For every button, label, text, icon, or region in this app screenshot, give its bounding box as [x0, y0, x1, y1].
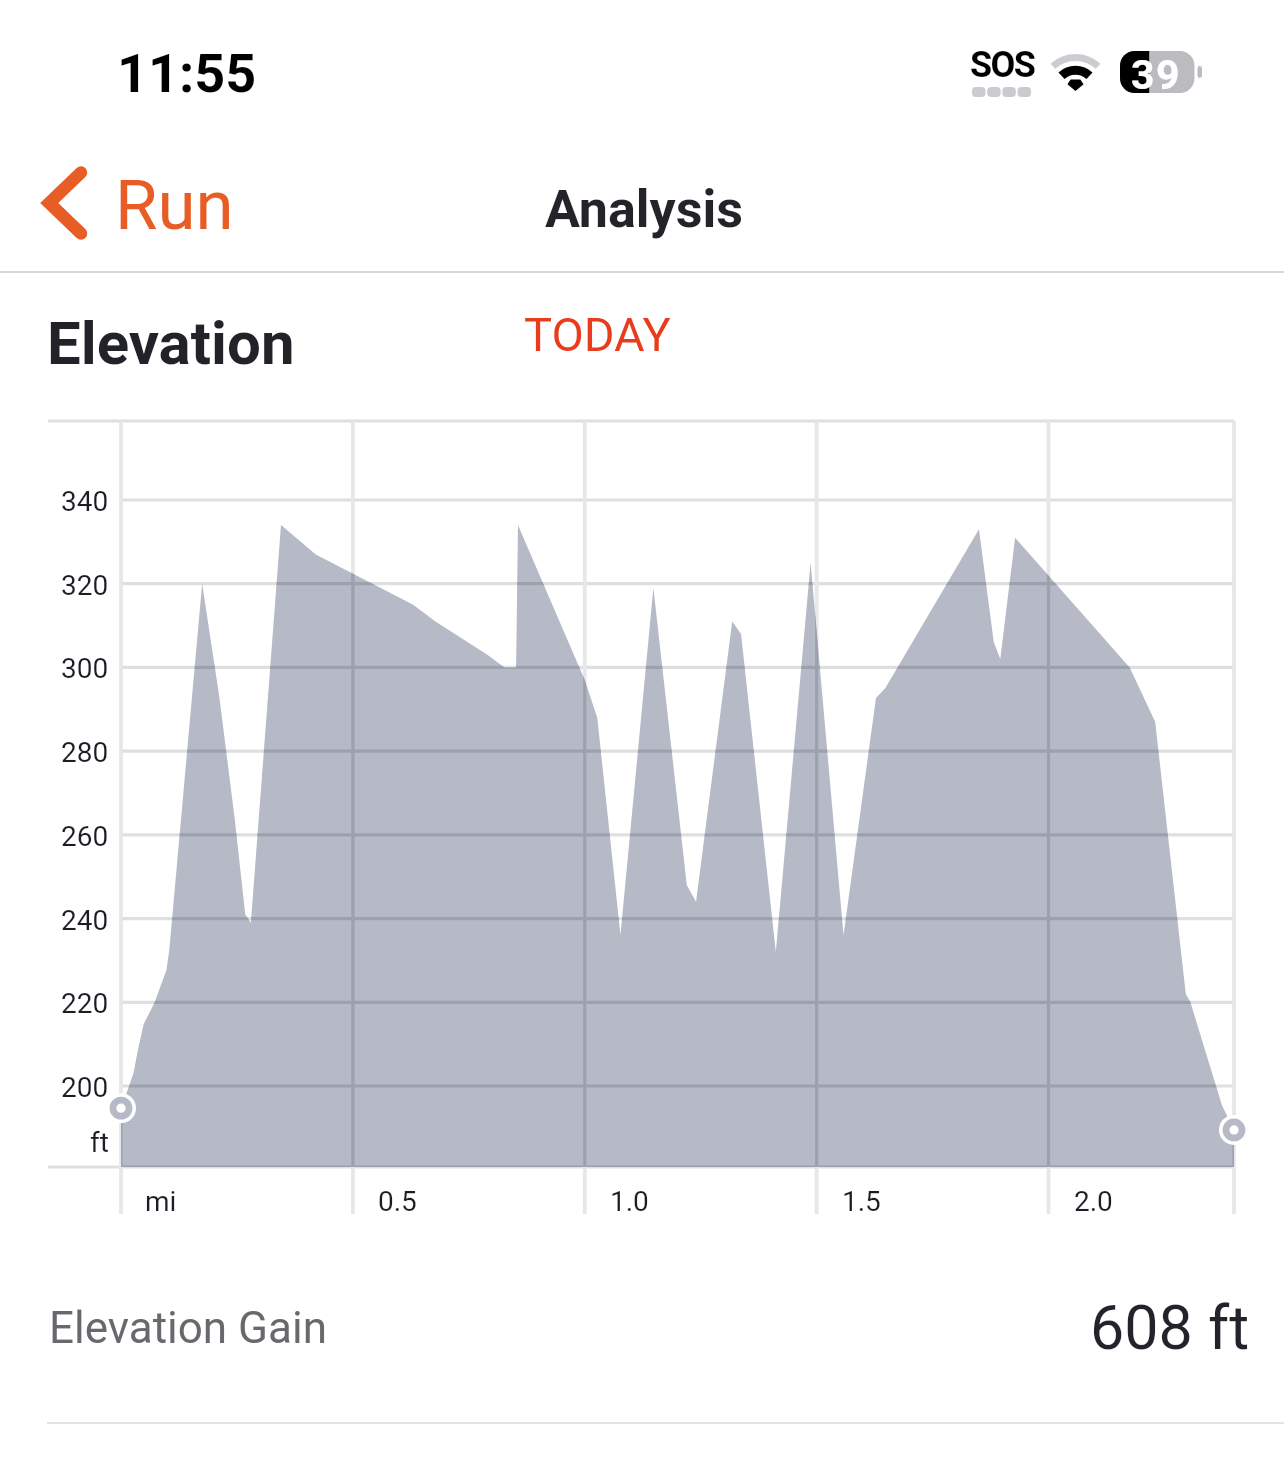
staticText: 280 — [61, 736, 109, 769]
staticText: Elevation — [47, 308, 295, 378]
staticText: 39 — [1131, 51, 1182, 93]
staticText: 260 — [61, 820, 109, 853]
staticText: 200 — [61, 1071, 109, 1104]
staticText: 1.5 — [842, 1185, 881, 1218]
staticText: 608 ft — [1090, 1292, 1250, 1363]
staticText: 300 — [61, 652, 109, 685]
staticText: mi — [145, 1185, 177, 1218]
other: Back — [43, 148, 88, 258]
button[interactable]: Back — [43, 148, 234, 258]
staticText: 340 — [61, 485, 109, 518]
staticText: Run — [115, 165, 234, 246]
staticText: 220 — [61, 987, 109, 1020]
button[interactable]: Elevation Gain — [0, 1262, 1284, 1422]
button[interactable]: TODAY — [510, 296, 657, 358]
staticText: Analysis — [545, 179, 744, 240]
staticText: TODAY — [524, 307, 671, 362]
staticText: 2.0 — [1074, 1185, 1113, 1218]
staticText: SOS — [970, 44, 1035, 86]
staticText: ft — [90, 1126, 109, 1159]
staticText: 11:55 — [117, 42, 257, 105]
staticText: 240 — [61, 904, 109, 937]
staticText: 320 — [61, 569, 109, 602]
staticText: Elevation Gain — [49, 1302, 327, 1354]
staticText: 0.5 — [378, 1185, 417, 1218]
staticText: 1.0 — [610, 1185, 649, 1218]
